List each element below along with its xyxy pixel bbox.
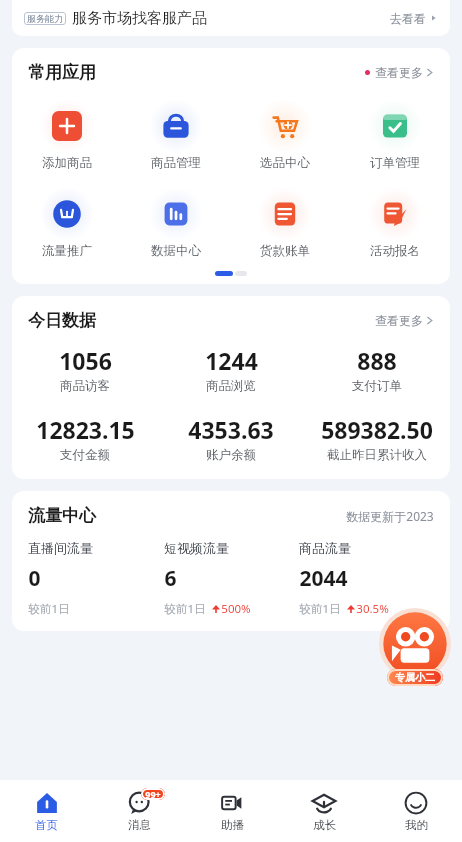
staticText: 0 — [28, 564, 41, 593]
button[interactable]: 查看更多 — [365, 65, 434, 80]
staticText: 首页 — [35, 818, 58, 832]
button[interactable]: 查看更多 — [375, 313, 434, 328]
staticText: 专属小二 — [395, 671, 435, 684]
staticText: 账户余额 — [206, 447, 256, 463]
button[interactable]: 订单管理 — [340, 97, 450, 173]
button[interactable]: 商品管理 — [121, 97, 230, 173]
staticText: 较前1日 — [164, 601, 206, 617]
button[interactable]: 首页 — [0, 780, 93, 842]
staticText: 去看看 — [390, 11, 426, 26]
staticText: 活动报名 — [370, 243, 420, 259]
button[interactable]: 服务能力 — [12, 0, 450, 36]
staticText: 99+ — [145, 788, 161, 800]
staticText: 选品中心 — [260, 155, 310, 171]
staticText: 4353.63 — [188, 414, 274, 445]
button[interactable]: 我的 — [370, 780, 462, 842]
staticText: 服务市场找客服产品 — [72, 9, 207, 28]
staticText: 直播间流量 — [28, 540, 93, 556]
staticText: 1056 — [59, 345, 112, 376]
staticText: 消息 — [128, 818, 151, 832]
button[interactable]: 成长 — [278, 780, 370, 842]
staticText: 成长 — [313, 818, 336, 832]
staticText: 6 — [164, 564, 177, 593]
button[interactable]: 数据中心 — [121, 185, 230, 261]
button[interactable]: 短视频流量 — [164, 540, 299, 617]
staticText: 12823.15 — [36, 414, 135, 445]
staticText: 添加商品 — [42, 155, 92, 171]
button[interactable]: 添加商品 — [12, 97, 121, 173]
staticText: 订单管理 — [370, 155, 420, 171]
staticText: 我的 — [405, 818, 428, 832]
staticText: 截止昨日累计收入 — [327, 447, 427, 463]
staticText: 常用应用 — [28, 62, 96, 83]
staticText: 助播 — [221, 818, 244, 832]
staticText: 较前1日 — [299, 601, 341, 617]
button[interactable]: 选品中心 — [230, 97, 340, 173]
staticText: 数据中心 — [151, 243, 201, 259]
staticText: 货款账单 — [260, 243, 310, 259]
staticText: 888 — [357, 345, 397, 376]
staticText: 500% — [221, 601, 251, 617]
staticText: 支付订单 — [352, 378, 402, 394]
button[interactable]: 货款账单 — [230, 185, 340, 261]
button[interactable]: 99+ — [93, 780, 186, 842]
staticText: 短视频流量 — [164, 540, 229, 556]
staticText: 商品浏览 — [206, 378, 256, 394]
staticText: 数据更新于2023 — [346, 508, 434, 524]
staticText: 流量推广 — [42, 243, 92, 259]
staticText: 1244 — [205, 345, 258, 376]
staticText: 商品访客 — [60, 378, 110, 394]
staticText: 流量中心 — [28, 505, 96, 526]
staticText: 30.5% — [356, 601, 389, 617]
staticText: 较前1日 — [28, 601, 70, 617]
button[interactable]: 专属小二 — [376, 608, 454, 686]
button[interactable]: 商品流量 — [299, 540, 434, 617]
staticText: 2044 — [299, 564, 348, 593]
button[interactable]: 活动报名 — [340, 185, 450, 261]
button[interactable]: 流量推广 — [12, 185, 121, 261]
staticText: 商品流量 — [299, 540, 351, 556]
staticText: 查看更多 — [375, 313, 423, 328]
staticText: 支付金额 — [60, 447, 110, 463]
staticText: 商品管理 — [151, 155, 201, 171]
staticText: 查看更多 — [375, 65, 423, 80]
staticText: 服务能力 — [27, 13, 63, 24]
button[interactable]: 直播间流量 — [28, 540, 164, 617]
button[interactable]: 助播 — [186, 780, 278, 842]
staticText: 589382.50 — [321, 414, 433, 445]
staticText: 今日数据 — [28, 310, 96, 331]
